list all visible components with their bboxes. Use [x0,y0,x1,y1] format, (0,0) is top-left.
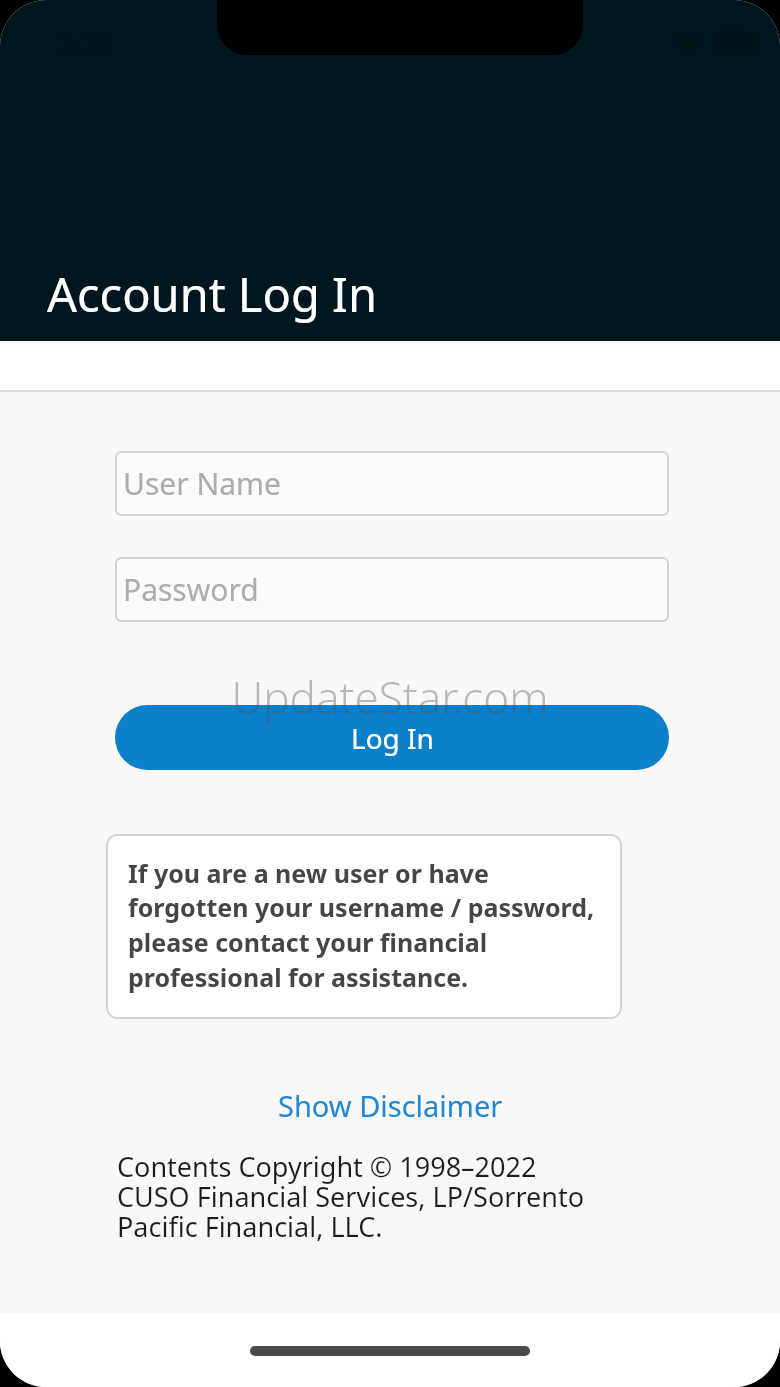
staticText: Show Disclaimer [278,1086,503,1125]
staticText: UpdateStar.com [0,667,780,727]
staticText: User Name [123,463,282,504]
button[interactable]: If you are a new user or have forgotten … [106,834,622,1019]
button[interactable]: User Name [115,451,669,516]
staticText: Log In [351,719,434,757]
staticText: If you are a new user or have forgotten … [128,856,606,995]
staticText: Password [123,569,259,610]
staticText: Account Log In [47,262,378,326]
button[interactable]: Log In [115,705,669,770]
button[interactable]: Password [115,557,669,622]
button[interactable]: Show Disclaimer [0,1086,780,1125]
staticText: Contents Copyright © 1998–2022 CUSO Fina… [117,1148,717,1244]
